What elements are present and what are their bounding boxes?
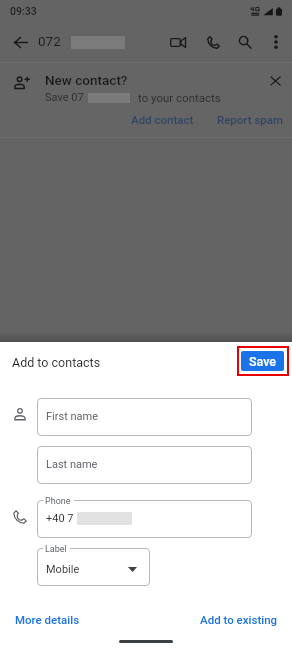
button[interactable]: More options — [262, 28, 290, 56]
staticText: +40 7 — [46, 512, 74, 525]
staticText: Report spam — [217, 113, 284, 126]
staticText: Label — [45, 544, 67, 555]
staticText: More details — [15, 613, 80, 626]
staticText: Phone — [45, 496, 71, 507]
button[interactable]: Search — [231, 28, 259, 56]
button[interactable]: Video call — [164, 28, 192, 56]
button[interactable]: Save — [241, 351, 284, 371]
staticText: Last name — [46, 458, 98, 471]
staticText: to your contacts — [138, 91, 221, 104]
staticText: Mobile — [46, 563, 80, 576]
staticText: First name — [46, 410, 99, 423]
button[interactable]: Back — [7, 28, 35, 56]
staticText: Save 07 — [45, 91, 84, 104]
staticText: Save — [249, 354, 277, 369]
button[interactable]: Call — [199, 28, 227, 56]
button[interactable]: Last name — [37, 446, 252, 484]
staticText: Add contact — [131, 113, 194, 126]
staticText: Add to contacts — [12, 355, 101, 370]
staticText: New contact? — [45, 72, 128, 88]
staticText: 09:33 — [10, 5, 37, 17]
button[interactable]: Report spam — [211, 108, 290, 131]
button[interactable]: +40 7 — [37, 500, 252, 538]
staticText: Add to existing — [200, 613, 278, 626]
button[interactable]: First name — [37, 398, 252, 436]
button[interactable]: Dismiss — [263, 69, 287, 93]
button[interactable]: Mobile — [37, 548, 150, 586]
button[interactable]: Add to existing — [194, 608, 284, 631]
button[interactable]: More details — [9, 608, 86, 631]
button[interactable]: Add contact — [125, 108, 200, 131]
staticText: 072 — [38, 33, 61, 49]
